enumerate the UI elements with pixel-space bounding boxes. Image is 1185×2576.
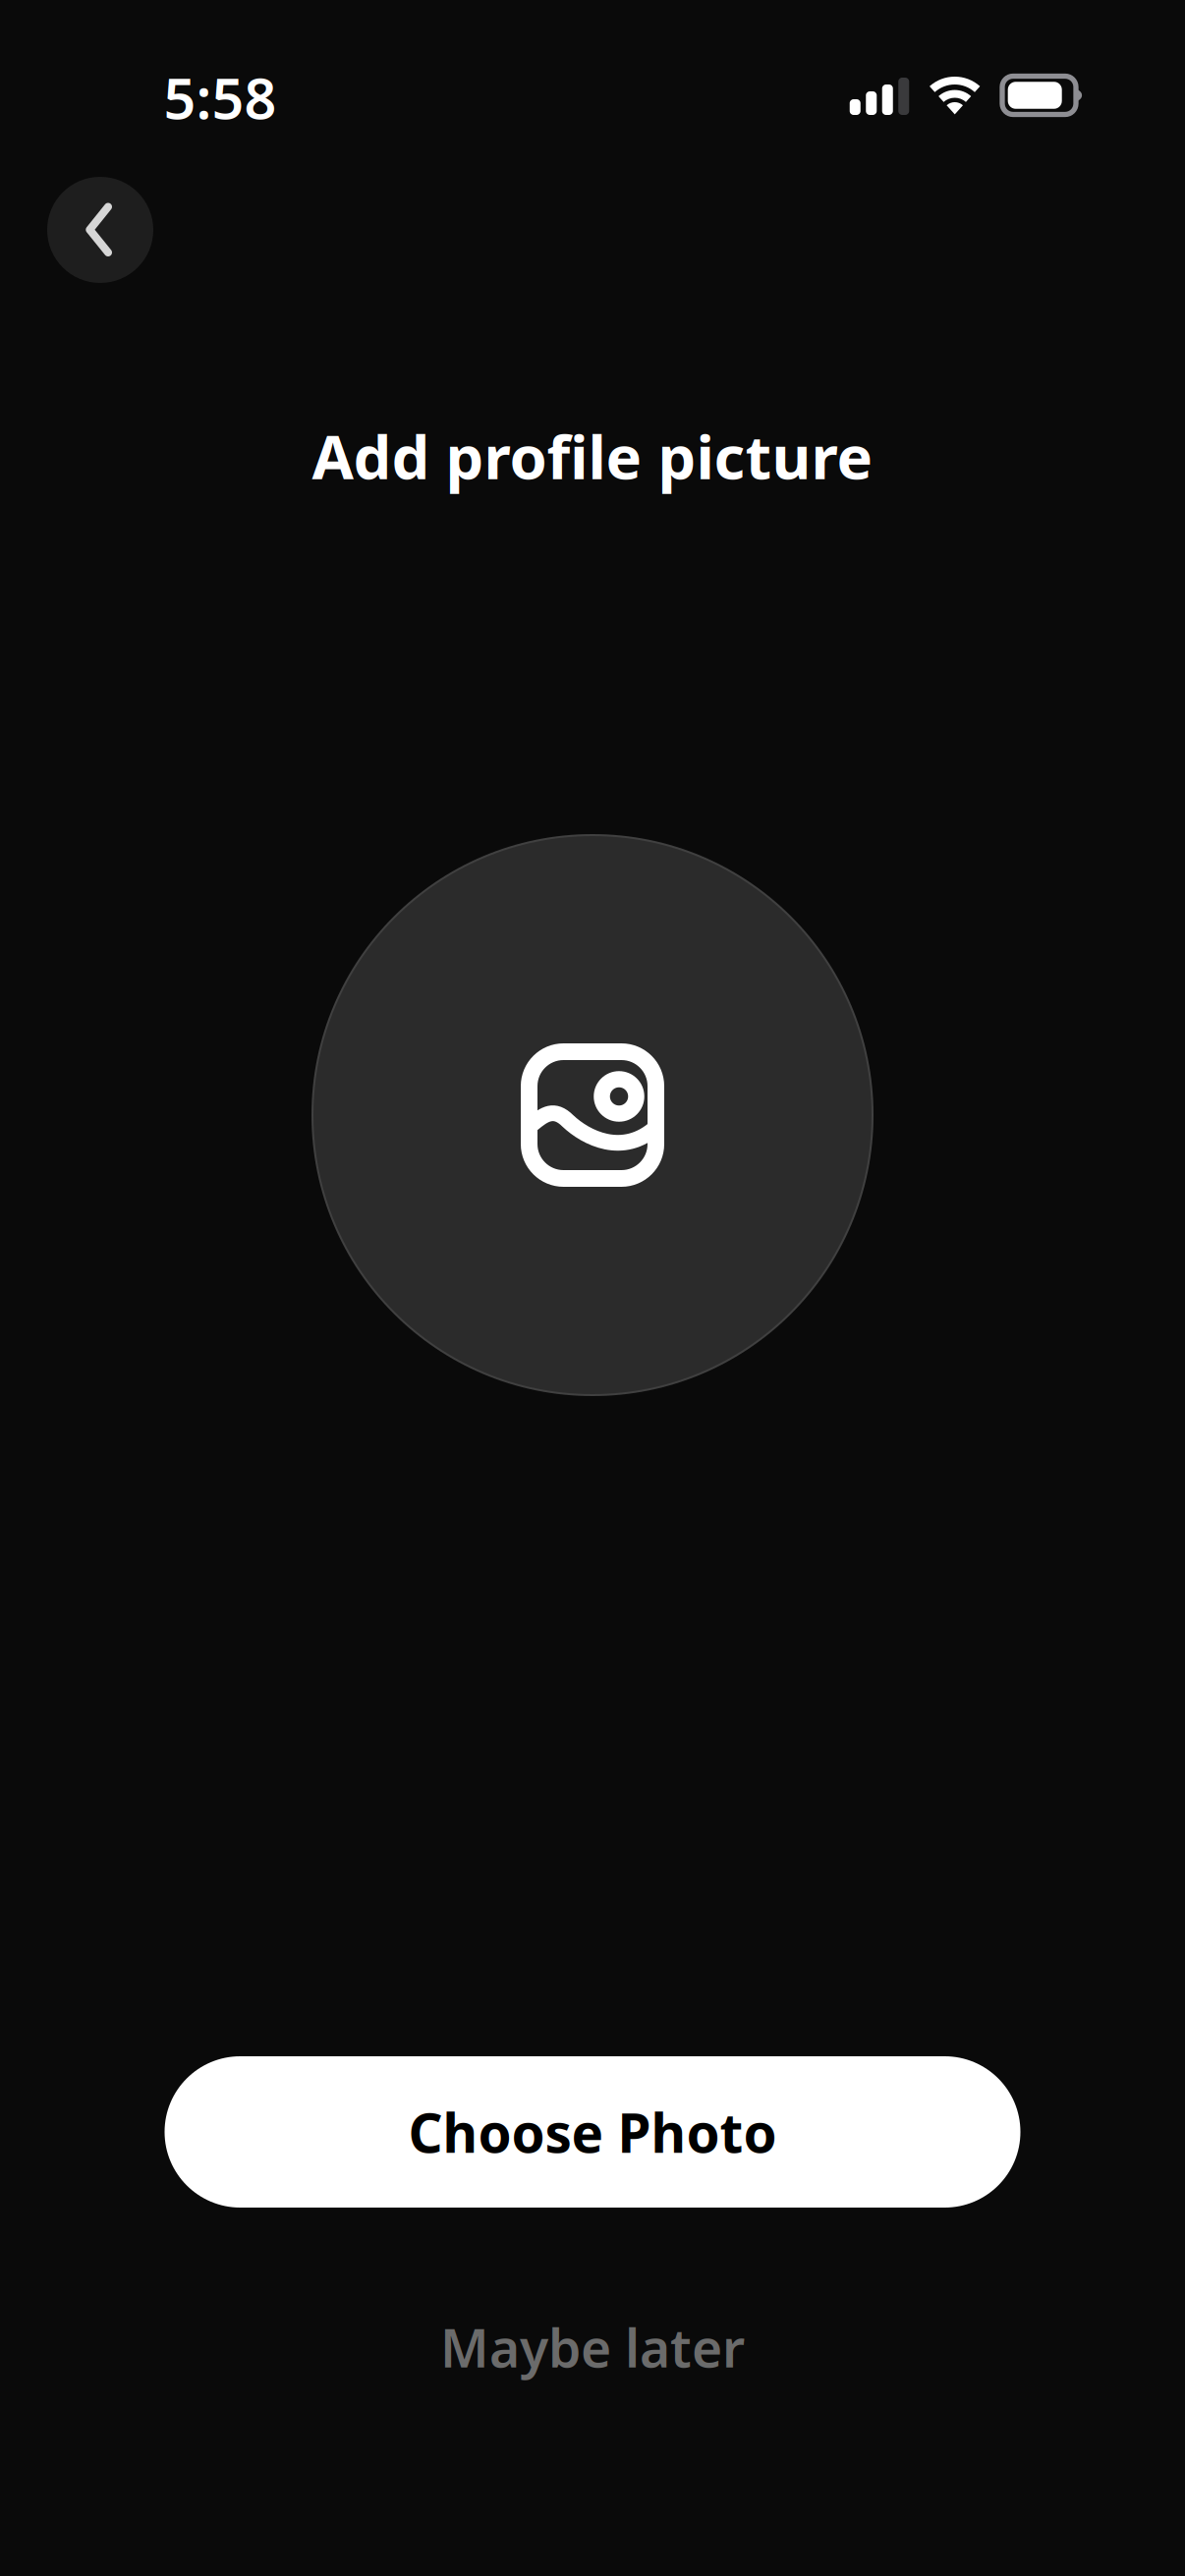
button[interactable]: Maybe later bbox=[357, 2300, 828, 2394]
button[interactable]: Choose Photo bbox=[165, 2056, 1020, 2208]
staticText: Maybe later bbox=[440, 2312, 745, 2382]
button[interactable]: Back bbox=[47, 177, 153, 283]
staticText: Choose Photo bbox=[408, 2096, 777, 2168]
staticText: Add profile picture bbox=[312, 416, 873, 496]
button[interactable]: Add profile photo bbox=[311, 834, 874, 1396]
staticText: 5:58 bbox=[164, 60, 277, 135]
